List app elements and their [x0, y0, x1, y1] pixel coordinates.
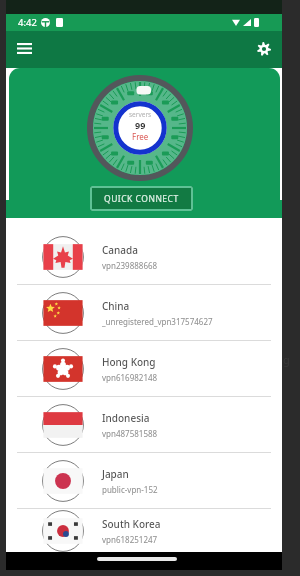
staticText: Indonesia — [102, 411, 150, 425]
button[interactable]: Indonesia — [6, 397, 282, 453]
staticText: vpn618251247 — [102, 534, 158, 545]
button[interactable]: Japan — [6, 453, 282, 509]
staticText: China — [102, 299, 130, 313]
staticText: Japan — [102, 467, 129, 481]
staticText: 99 — [135, 119, 146, 131]
button[interactable]: Hong Kong — [6, 341, 282, 397]
staticText: Hong Kong — [102, 355, 156, 369]
staticText: vpn487581588 — [102, 428, 158, 439]
staticText: servers — [129, 110, 152, 119]
staticText: public-vpn-152 — [102, 484, 158, 495]
staticText: QUICK CONNECT — [104, 193, 179, 205]
staticText: 4:42 — [18, 16, 37, 29]
button[interactable]: Canada — [6, 218, 282, 285]
staticText: vpn239888668 — [102, 260, 158, 271]
button[interactable]: Open navigation menu — [8, 32, 41, 65]
button[interactable]: Settings — [247, 32, 280, 65]
staticText: _unregistered_vpn317574627 — [102, 316, 213, 327]
button[interactable]: South Korea — [6, 509, 282, 552]
staticText: g — [283, 352, 293, 367]
staticText: South Korea — [102, 517, 161, 531]
staticText: Free — [132, 131, 149, 142]
button[interactable]: China — [6, 285, 282, 341]
button[interactable]: QUICK CONNECT — [90, 186, 193, 211]
staticText: vpn616982148 — [102, 372, 158, 383]
staticText: Canada — [102, 243, 138, 257]
